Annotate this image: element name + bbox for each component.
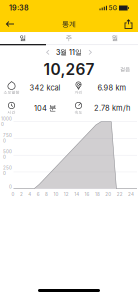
staticText: 20	[105, 192, 111, 197]
staticText: 걸음	[120, 66, 130, 73]
staticText: 19:38	[9, 4, 29, 12]
staticText: 2500	[3, 165, 12, 176]
button[interactable]: 월	[92, 32, 138, 44]
staticText: 0	[9, 184, 12, 190]
staticText: 104 분	[34, 103, 56, 113]
button[interactable]: Previous day	[43, 46, 53, 58]
staticText: 10	[53, 192, 58, 197]
staticText: 8	[45, 192, 48, 197]
staticText: 2.78 km/h	[94, 104, 130, 113]
staticText: 12	[64, 192, 69, 197]
staticText: 10,267	[43, 60, 94, 79]
staticText: 4	[28, 192, 31, 197]
staticText: 6	[37, 192, 40, 197]
staticText: 5000	[3, 149, 12, 160]
staticText: 3월 11일	[56, 48, 82, 57]
staticText: 10000	[1, 116, 12, 127]
button[interactable]: Share	[122, 16, 135, 31]
button[interactable]: 일	[0, 32, 46, 44]
staticText: 14	[74, 192, 79, 197]
staticText: 22	[117, 192, 123, 197]
staticText: 5G	[108, 4, 117, 12]
staticText: 거리	[74, 90, 82, 94]
button[interactable]: Next day	[85, 46, 95, 58]
staticText: 7500	[3, 132, 12, 143]
staticText: 342 kcal	[29, 83, 60, 92]
staticText: 2	[20, 192, 23, 197]
staticText: 소모열량	[3, 90, 19, 94]
staticText: 16	[84, 192, 89, 197]
staticText: 월	[111, 34, 118, 42]
staticText: 24	[128, 192, 134, 197]
button[interactable]: Back	[3, 17, 17, 30]
staticText: 일	[19, 34, 26, 42]
staticText: 18	[95, 192, 100, 197]
staticText: 주	[65, 34, 72, 42]
staticText: 속도	[74, 110, 82, 115]
button[interactable]: 주	[46, 32, 92, 44]
staticText: 0	[11, 192, 14, 197]
staticText: 6.98 km	[97, 83, 126, 92]
staticText: 시간	[7, 110, 15, 115]
staticText: 통계	[62, 19, 76, 29]
